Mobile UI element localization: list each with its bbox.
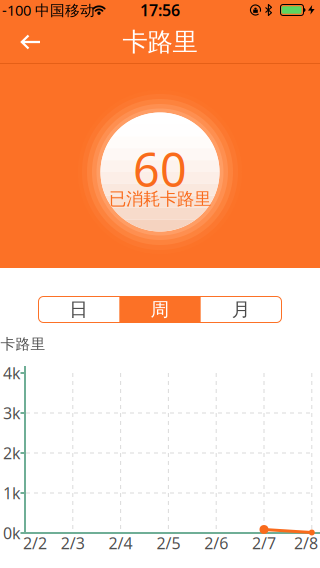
staticText: 60 [133,138,187,200]
staticText: 2/8 [294,532,318,554]
staticText: 2/5 [156,532,180,554]
staticText: 卡路里 [0,335,45,353]
staticText: 17:56 [140,0,180,21]
staticText: 0k [3,522,21,544]
staticText: 2/6 [204,532,228,554]
staticText: -100 中国移动 [2,0,95,20]
staticText: 1k [3,482,21,504]
staticText: 2/4 [109,532,133,554]
button[interactable]: 日 [38,296,119,323]
button[interactable]: Back [15,27,47,57]
staticText: 2k [3,442,21,464]
staticText: 3k [3,402,21,424]
staticText: 2/2 [23,532,47,554]
staticText: 月 [232,298,251,321]
staticText: 卡路里 [122,26,197,57]
staticText: 周 [150,298,169,321]
staticText: 4k [3,362,21,384]
staticText: 2/3 [61,532,85,554]
staticText: 已消耗卡路里 [109,188,211,210]
staticText: 日 [69,298,88,321]
button[interactable]: 月 [201,296,282,323]
staticText: 2/7 [252,532,276,554]
button[interactable]: 周 [119,296,201,323]
